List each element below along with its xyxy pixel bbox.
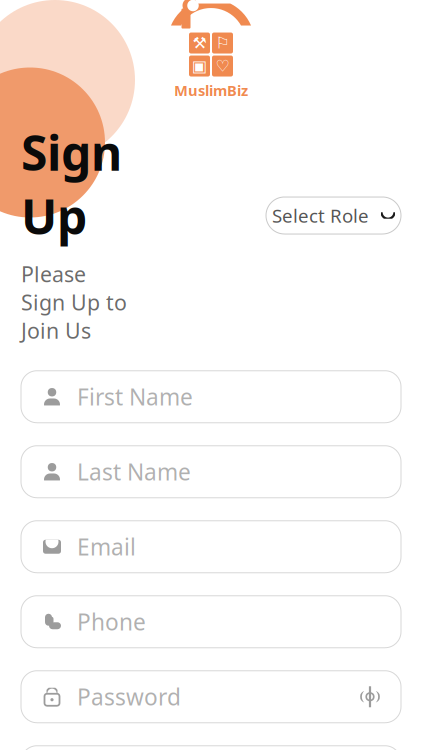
staticText: ▣ [192,57,207,75]
button[interactable]: Select Role [266,197,401,234]
staticText: ♡ [215,57,229,75]
staticText: ⚐ [215,34,229,52]
staticText: Sign Up [21,120,122,248]
staticText: Email [77,532,136,562]
staticText: Password [77,682,181,712]
staticText: First Name [77,382,193,412]
button[interactable]: Confirm Password [21,746,401,750]
staticText: MuslimBiz [174,80,248,100]
button[interactable]: Password [21,671,401,723]
button[interactable]: Email [21,521,401,573]
staticText: Please Sign Up to Join Us [21,260,127,345]
staticText: ⚒ [192,34,206,52]
staticText: Select Role [272,203,369,228]
button[interactable]: First Name [21,371,401,423]
button[interactable]: Last Name [21,446,401,498]
button[interactable]: Phone [21,596,401,648]
staticText: Last Name [77,457,191,487]
staticText: Phone [77,607,146,637]
